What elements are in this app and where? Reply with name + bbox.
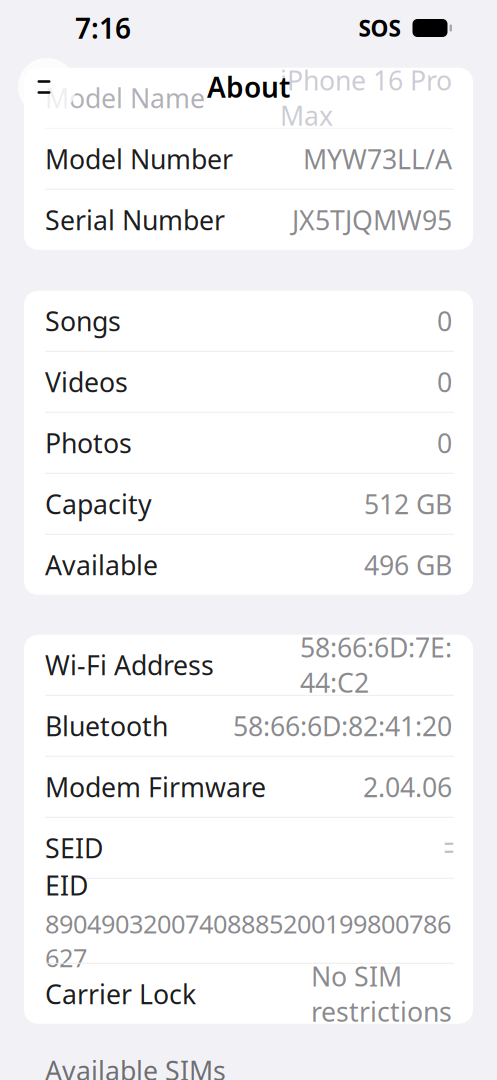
staticText: Modem Firmware: [45, 769, 266, 804]
staticText: 512 GB: [364, 486, 452, 521]
staticText: 58:66:6D:82:41:20: [233, 708, 452, 743]
staticText: iPhone 16 Pro Max: [280, 62, 452, 133]
staticText: EID: [45, 867, 88, 903]
staticText: 58:66:6D:7E:44:C2: [300, 629, 452, 700]
staticText: SOS: [358, 13, 400, 43]
staticText: Available: [45, 547, 158, 582]
staticText: 0: [437, 303, 452, 338]
staticText: Available SIMs: [45, 1053, 226, 1080]
staticText: Wi-Fi Address: [45, 647, 214, 682]
staticText: Songs: [45, 303, 121, 338]
staticText: 2.04.06: [363, 769, 452, 804]
staticText: JX5TJQMW95: [292, 202, 452, 237]
staticText: About: [207, 68, 290, 106]
staticText: Carrier Lock: [45, 976, 196, 1011]
staticText: Model Name: [45, 80, 205, 115]
staticText: 89049032007408885200199800786627: [45, 907, 451, 974]
staticText: Videos: [45, 364, 128, 399]
button[interactable]: Back: [18, 58, 76, 116]
staticText: MYW73LL/A: [303, 141, 452, 176]
staticText: Serial Number: [45, 202, 225, 237]
staticText: Bluetooth: [45, 708, 168, 743]
staticText: No SIM restrictions: [311, 958, 452, 1029]
staticText: 496 GB: [364, 547, 452, 582]
staticText: Model Number: [45, 141, 233, 176]
staticText: 0: [437, 364, 452, 399]
staticText: Photos: [45, 425, 132, 460]
staticText: 7:16: [75, 9, 131, 47]
staticText: Capacity: [45, 486, 152, 521]
staticText: 0: [437, 425, 452, 460]
staticText: SEID: [45, 830, 103, 865]
button[interactable]: SEID: [24, 818, 473, 878]
